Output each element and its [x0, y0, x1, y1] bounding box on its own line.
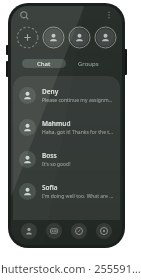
staticText: Chat — [37, 60, 51, 68]
button[interactable]: Story — [68, 26, 91, 49]
staticText: Please continue my assignment while I ha… — [42, 97, 114, 104]
staticText: Deny — [42, 87, 59, 96]
staticText: I'm doing well too. What are you up to? — [42, 193, 114, 200]
button[interactable]: Deny — [13, 79, 120, 111]
button[interactable]: Sofia — [13, 175, 120, 207]
staticText: hutterstock.com · 255591613 — [1, 261, 141, 276]
button[interactable]: Settings — [96, 223, 112, 239]
button[interactable]: Calls — [71, 223, 87, 239]
staticText: Haha, got it! Thanks for the tip! — [42, 129, 114, 136]
staticText: Mahmud — [42, 119, 71, 128]
button[interactable]: Boss — [13, 143, 120, 175]
staticText: Sofia — [42, 183, 58, 192]
button[interactable]: More options — [102, 8, 116, 22]
staticText: It's so good! — [42, 161, 71, 168]
button[interactable]: Story — [42, 26, 65, 49]
button[interactable]: Search — [17, 8, 31, 22]
button[interactable]: Chats — [21, 223, 37, 239]
staticText: Boss — [42, 151, 57, 160]
button[interactable]: Chat — [22, 59, 66, 68]
staticText: Groups — [78, 60, 99, 68]
button[interactable]: Mahmud — [13, 111, 120, 143]
button[interactable]: Stories — [46, 223, 62, 239]
button[interactable]: Add story — [16, 26, 39, 49]
button[interactable]: Groups — [66, 59, 111, 68]
button[interactable]: Story — [94, 26, 117, 49]
